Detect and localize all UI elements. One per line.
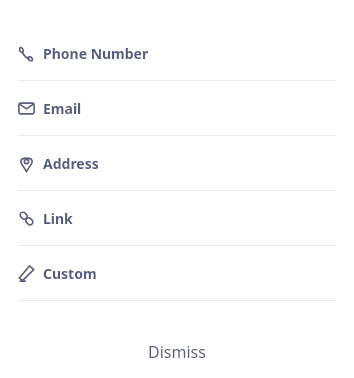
button[interactable]: Phone Number xyxy=(0,26,354,80)
staticText: Address xyxy=(43,154,99,173)
button[interactable]: Link xyxy=(0,191,354,245)
staticText: Phone Number xyxy=(43,44,149,63)
button[interactable]: Dismiss xyxy=(0,329,354,375)
button[interactable]: Email xyxy=(0,81,354,135)
staticText: Link xyxy=(43,209,73,228)
button[interactable]: Address xyxy=(0,136,354,190)
button[interactable]: Custom xyxy=(0,246,354,300)
staticText: Dismiss xyxy=(148,341,206,363)
staticText: Custom xyxy=(43,264,97,283)
staticText: Email xyxy=(43,99,82,118)
